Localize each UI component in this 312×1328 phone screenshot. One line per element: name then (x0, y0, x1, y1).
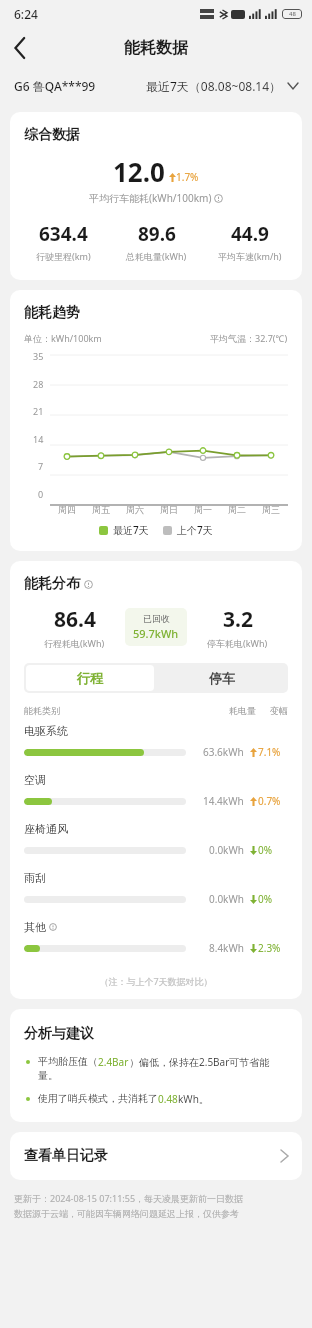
staticText: 空调 (24, 773, 46, 787)
staticText: 能耗类别 (24, 705, 60, 716)
staticText: 平均胎压值（ (38, 1055, 98, 1068)
staticText: 89.6 (138, 221, 176, 247)
staticText: 能耗趋势 (24, 304, 80, 322)
staticText: 行驶里程(km) (36, 250, 91, 262)
staticText: 0% (258, 892, 273, 906)
staticText: 平均气温：32.7(℃) (210, 332, 288, 344)
staticText: 平均车速(km/h) (218, 250, 282, 262)
staticText: 上个7天 (177, 523, 213, 537)
staticText: 量。 (38, 1069, 58, 1082)
staticText: 雨刮 (24, 871, 46, 885)
staticText: 查看单日记录 (24, 1147, 108, 1165)
staticText: 分析与建议 (24, 1025, 94, 1043)
staticText: 0.0kWh (209, 892, 244, 906)
staticText: 7 (38, 460, 44, 472)
staticText: 周一 (194, 504, 212, 515)
staticText: 21 (33, 405, 44, 417)
staticText: 耗电量 (229, 705, 256, 716)
staticText: 变幅 (270, 705, 288, 716)
staticText: 59.7kWh (133, 626, 179, 641)
staticText: 14 (33, 433, 44, 445)
button[interactable]: 行程 (26, 665, 154, 691)
button[interactable]: 查看单日记录 (10, 1132, 302, 1180)
staticText: 平均行车能耗(kWh/100km) (89, 191, 212, 205)
button[interactable]: G6 鲁QA***99 (14, 78, 96, 94)
staticText: 使用了哨兵模式，共消耗了 (38, 1092, 158, 1105)
staticText: 634.4 (39, 221, 88, 247)
staticText: 周六 (126, 504, 144, 515)
staticText: ）偏低，保持在2.5Bar可节省能 (129, 1055, 270, 1069)
staticText: 2.4Bar (98, 1055, 129, 1069)
staticText: 0 (38, 488, 44, 500)
staticText: 86.4 (54, 605, 96, 634)
staticText: 周二 (228, 504, 246, 515)
staticText: 能耗分布 (24, 575, 80, 593)
staticText: 3.2 (223, 605, 253, 634)
staticText: 已回收 (143, 613, 170, 624)
staticText: 0% (258, 843, 273, 857)
staticText: 周四 (58, 504, 76, 515)
staticText: 行程耗电(kWh) (44, 637, 105, 649)
staticText: 综合数据 (24, 126, 80, 144)
staticText: 更新于：2024-08-15 07:11:55，每天凌晨更新前一日数据 (14, 1192, 244, 1204)
staticText: 48 (289, 10, 296, 18)
staticText: 总耗电量(kWh) (126, 250, 187, 262)
staticText: 能耗数据 (124, 38, 188, 58)
staticText: 0.48 (158, 1092, 178, 1106)
staticText: 12.0 (113, 154, 165, 189)
staticText: （注：与上个7天数据对比） (10, 975, 302, 987)
staticText: 最近7天（08.08~08.14） (146, 78, 282, 94)
staticText: 座椅通风 (24, 822, 68, 836)
button[interactable]: Back (0, 28, 40, 68)
staticText: kWh。 (178, 1092, 209, 1106)
staticText: 6:24 (14, 6, 38, 22)
staticText: 1.7% (176, 170, 199, 184)
staticText: 数据源于云端，可能因车辆网络问题延迟上报，仅供参考 (14, 1208, 239, 1219)
staticText: 周五 (92, 504, 110, 515)
staticText: 0.7% (258, 794, 281, 808)
staticText: 其他 (24, 920, 46, 934)
staticText: 周日 (160, 504, 178, 515)
staticText: 7.1% (258, 745, 281, 759)
staticText: 周三 (262, 504, 280, 515)
staticText: 电驱系统 (24, 724, 68, 738)
staticText: 单位：kWh/100km (24, 332, 102, 344)
button[interactable]: 最近7天（08.08~08.14） (146, 78, 298, 94)
staticText: 8.4kWh (209, 941, 244, 955)
staticText: 28 (33, 378, 44, 390)
staticText: 停车耗电(kWh) (207, 637, 268, 649)
staticText: 63.6kWh (203, 745, 244, 759)
staticText: 停车 (209, 670, 235, 686)
staticText: 14.4kWh (203, 794, 244, 808)
staticText: 最近7天 (113, 523, 149, 537)
button[interactable]: 停车 (156, 663, 288, 693)
staticText: 35 (33, 350, 44, 362)
staticText: 行程 (77, 670, 103, 686)
staticText: 44.9 (231, 221, 269, 247)
staticText: 2.3% (258, 941, 281, 955)
staticText: 0.0kWh (209, 843, 244, 857)
